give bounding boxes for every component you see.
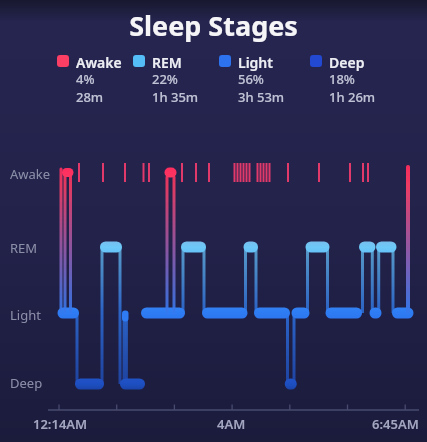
staticText: 4AM bbox=[217, 415, 246, 433]
staticText: 1h 26m bbox=[329, 88, 376, 106]
staticText: 12:14AM bbox=[33, 415, 88, 433]
staticText: REM bbox=[10, 239, 38, 257]
staticText: 3h 53m bbox=[238, 88, 285, 106]
staticText: Light bbox=[238, 53, 273, 72]
staticText: 6:45AM bbox=[372, 415, 419, 433]
staticText: Awake bbox=[76, 53, 122, 72]
staticText: 22% bbox=[152, 70, 178, 88]
staticText: Light bbox=[10, 306, 41, 324]
staticText: Deep bbox=[10, 374, 43, 392]
staticText: Awake bbox=[10, 165, 51, 183]
button[interactable] bbox=[133, 55, 145, 67]
staticText: 56% bbox=[238, 70, 264, 88]
button[interactable] bbox=[219, 55, 231, 67]
staticText: 28m bbox=[76, 88, 104, 106]
button[interactable] bbox=[310, 55, 322, 67]
staticText: Sleep Stages bbox=[0, 7, 427, 44]
staticText: 4% bbox=[76, 70, 95, 88]
staticText: 1h 35m bbox=[152, 88, 199, 106]
staticText: REM bbox=[152, 53, 182, 72]
staticText: 18% bbox=[329, 70, 355, 88]
staticText: Deep bbox=[329, 53, 365, 72]
button[interactable] bbox=[57, 55, 69, 67]
